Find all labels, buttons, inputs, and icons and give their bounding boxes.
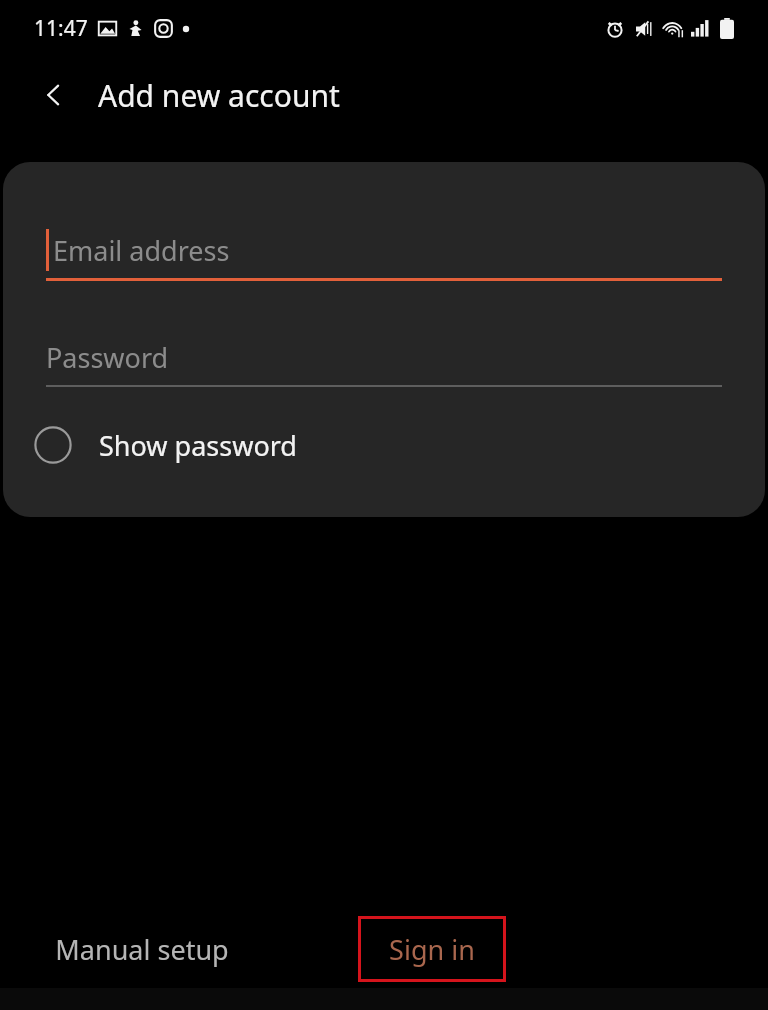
staticText: Manual setup xyxy=(55,931,229,968)
staticText: Add new account xyxy=(98,75,340,116)
button[interactable]: Back xyxy=(30,71,78,119)
button[interactable]: Sign in xyxy=(358,916,506,982)
staticText: Show password xyxy=(99,427,297,464)
button[interactable]: Password xyxy=(46,329,722,385)
button[interactable]: Show password xyxy=(33,409,735,481)
button[interactable]: Email address xyxy=(46,222,722,278)
button[interactable]: Manual setup xyxy=(0,916,284,982)
staticText: Email address xyxy=(53,232,230,269)
staticText: 11:47 xyxy=(34,14,88,43)
staticText: Password xyxy=(46,339,169,376)
staticText: Sign in xyxy=(389,931,475,968)
